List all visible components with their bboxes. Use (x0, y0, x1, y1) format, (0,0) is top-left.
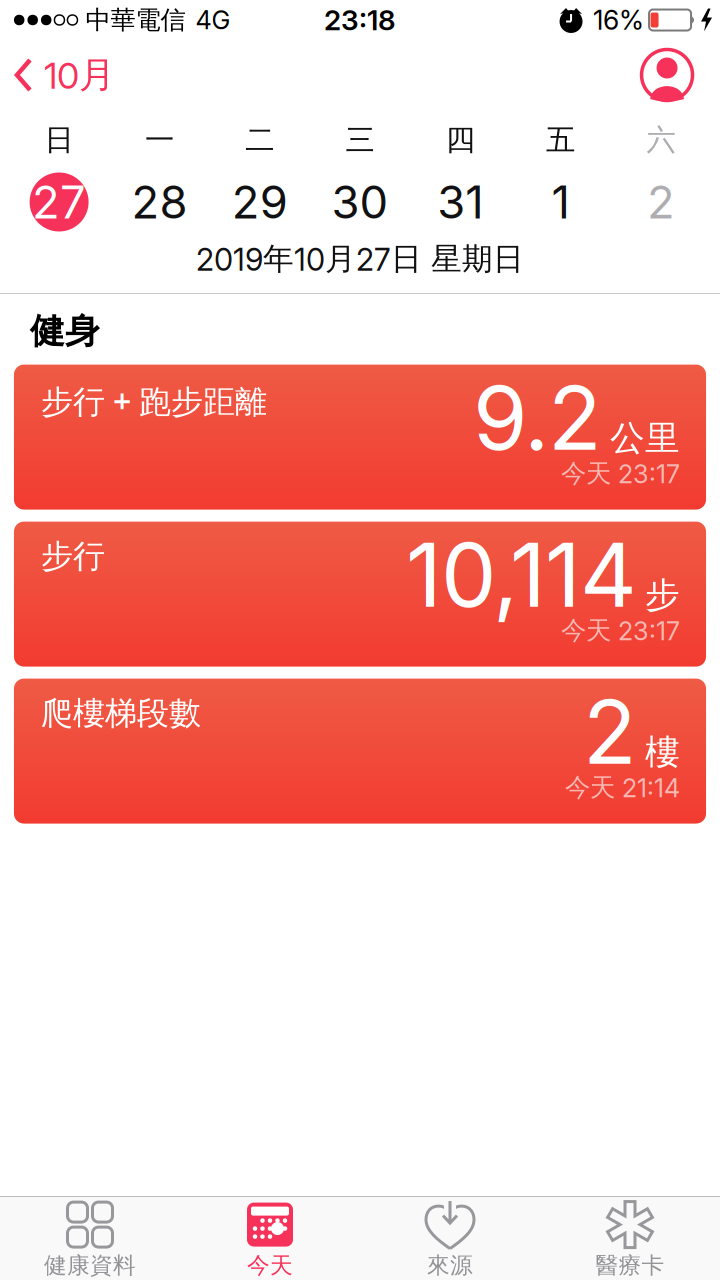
staticText: 步 (645, 574, 680, 617)
staticText: 來源 (427, 1252, 473, 1279)
staticText: 今天 21:14 (565, 772, 680, 804)
button[interactable]: 2 (611, 166, 711, 238)
staticText: 步行 (41, 537, 105, 576)
button[interactable]: 步行 (14, 522, 706, 667)
button[interactable]: 30 (310, 166, 410, 238)
staticText: 健身 (30, 310, 100, 353)
staticText: 今天 23:17 (561, 615, 680, 647)
button[interactable]: 29 (210, 166, 310, 238)
staticText: 1 (552, 175, 570, 229)
staticText: 六 (646, 122, 675, 158)
staticText: 公里 (610, 417, 680, 460)
staticText: 30 (331, 175, 388, 229)
staticText: 10,114 (406, 522, 637, 628)
button[interactable]: 10月 (14, 52, 115, 98)
staticText: 醫療卡 (595, 1252, 664, 1279)
staticText: 2019年10月27日 星期日 (196, 240, 524, 278)
staticText: 三 (345, 122, 374, 158)
staticText: 31 (437, 175, 483, 229)
button[interactable]: 2019年10月27日 星期日 (196, 238, 524, 280)
staticText: 五 (546, 122, 575, 158)
button[interactable]: 來源 (360, 1197, 540, 1280)
staticText: 今天 23:17 (561, 458, 680, 490)
staticText: 爬樓梯段數 (41, 694, 201, 733)
button[interactable]: 27 (9, 166, 109, 238)
button[interactable]: 今天 (180, 1197, 360, 1280)
button[interactable]: 爬樓梯段數 (14, 679, 706, 824)
button[interactable]: 步行 + 跑步距離 (14, 365, 706, 510)
button[interactable]: 31 (410, 166, 510, 238)
staticText: 健康資料 (44, 1252, 136, 1279)
staticText: 9.2 (473, 365, 602, 471)
staticText: 4G (195, 5, 230, 35)
button[interactable]: 醫療卡 (540, 1197, 720, 1280)
staticText: 四 (446, 122, 475, 158)
staticText: 一 (145, 122, 174, 158)
staticText: 23:18 (324, 3, 396, 37)
button[interactable]: 28 (109, 166, 210, 238)
staticText: 10月 (44, 52, 115, 98)
staticText: 中華電信 (85, 4, 185, 35)
staticText: 27 (32, 175, 86, 229)
staticText: 步行 + 跑步距離 (41, 380, 267, 422)
staticText: 28 (131, 175, 187, 229)
staticText: 2 (583, 679, 637, 785)
staticText: 二 (245, 122, 274, 158)
staticText: 2 (647, 175, 675, 229)
staticText: 日 (45, 122, 74, 158)
button[interactable]: 1 (510, 166, 611, 238)
button[interactable] (640, 48, 694, 102)
staticText: 16% (593, 4, 644, 36)
staticText: 29 (232, 175, 288, 229)
button[interactable]: 健康資料 (0, 1197, 180, 1280)
staticText: 今天 (247, 1252, 293, 1279)
staticText: 樓 (645, 731, 680, 774)
